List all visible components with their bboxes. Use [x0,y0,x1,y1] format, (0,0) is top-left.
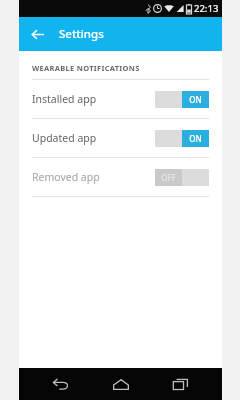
button[interactable]: Off [155,169,209,186]
button[interactable]: Removed app [19,158,222,196]
staticText: 22:13 [194,2,219,15]
button[interactable]: On [155,130,209,147]
staticText: OFF [161,172,176,183]
button[interactable]: Back [24,21,50,47]
button[interactable]: Updated app [19,119,222,157]
staticText: Settings [59,26,104,42]
button[interactable]: Installed app [19,80,222,118]
staticText: WEARABLE NOTIFICATIONS [32,63,140,73]
staticText: Installed app [32,92,97,106]
staticText: ON [189,94,202,105]
staticText: Removed app [32,170,100,184]
button[interactable]: Home [104,368,138,400]
staticText: Updated app [32,131,97,145]
button[interactable]: Recent apps [163,368,197,400]
staticText: ON [189,133,202,144]
button[interactable]: On [155,91,209,108]
button[interactable]: Back [44,368,78,400]
